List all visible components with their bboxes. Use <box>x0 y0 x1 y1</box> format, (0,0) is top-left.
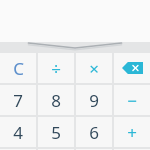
button[interactable]: 4 <box>0 117 36 147</box>
staticText: ÷ <box>51 57 61 80</box>
staticText: C <box>13 57 24 80</box>
button[interactable]: 9 <box>76 85 112 115</box>
button[interactable]: + <box>114 117 150 147</box>
button[interactable]: − <box>114 85 150 115</box>
button[interactable]: 8 <box>38 85 74 115</box>
button[interactable]: Backspace <box>114 53 150 83</box>
staticText: + <box>127 121 137 144</box>
staticText: 7 <box>13 89 23 112</box>
staticText: − <box>127 89 137 112</box>
button[interactable]: 5 <box>38 117 74 147</box>
button[interactable]: C <box>0 53 36 83</box>
staticText: × <box>89 57 99 80</box>
staticText: 5 <box>51 121 61 144</box>
staticText: 6 <box>89 121 99 144</box>
staticText: 8 <box>51 89 61 112</box>
button[interactable]: 7 <box>0 85 36 115</box>
staticText: 4 <box>13 121 23 144</box>
button[interactable]: Collapse keypad <box>0 42 150 53</box>
button[interactable]: 6 <box>76 117 112 147</box>
button[interactable]: × <box>76 53 112 83</box>
button[interactable]: ÷ <box>38 53 74 83</box>
staticText: 9 <box>89 89 99 112</box>
